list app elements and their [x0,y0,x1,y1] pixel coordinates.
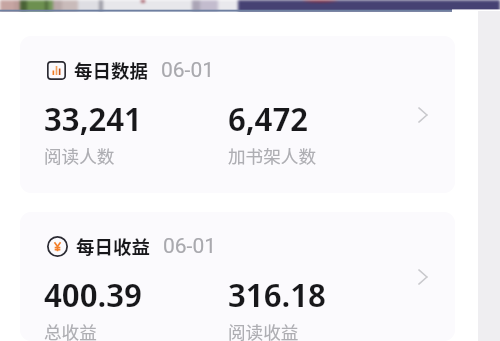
button[interactable]: 查看详情 [409,102,435,128]
staticText: 总收益 [44,319,97,341]
staticText: 316.18 [228,272,326,317]
staticText: 阅读收益 [228,319,299,341]
staticText: 每日数据 [74,57,149,84]
button[interactable]: 每日数据 [20,36,455,193]
staticText: 06-01 [161,58,215,83]
button[interactable]: 查看详情 [409,264,435,290]
staticText: 33,241 [44,96,142,141]
staticText: 阅读人数 [44,143,115,168]
staticText: 06-01 [163,234,217,259]
staticText: 400.39 [44,272,142,317]
staticText: 加书架人数 [228,143,316,168]
staticText: 每日收益 [76,233,151,260]
staticText: 6,472 [228,96,309,141]
button[interactable]: 每日收益 [20,212,455,341]
